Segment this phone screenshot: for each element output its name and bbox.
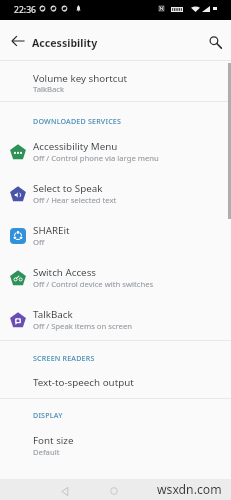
staticText: Text-to-speech output	[33, 376, 134, 389]
staticText: Volume key shortcut	[33, 72, 128, 85]
staticText: Switch Access	[33, 266, 97, 279]
button[interactable]: SHAREit	[0, 217, 231, 259]
button[interactable]: Font size	[0, 427, 231, 471]
staticText: SHAREit	[33, 224, 70, 237]
button[interactable]: Select to Speak	[0, 175, 231, 217]
button[interactable]: TalkBack	[0, 301, 231, 343]
staticText: Off / Control device with switches	[33, 279, 154, 289]
staticText: Default	[33, 447, 60, 457]
button[interactable]: Volume key shortcut	[0, 61, 231, 105]
staticText: SCREEN READERS	[33, 353, 95, 363]
button[interactable]: Accessibility Menu	[0, 133, 231, 175]
staticText: Accessibility Menu	[33, 140, 118, 153]
button[interactable]: Back	[3, 26, 33, 56]
staticText: wsxdn.com	[157, 481, 222, 498]
staticText: DOWNLOADED SERVICES	[33, 116, 122, 126]
staticText: Off / Speak items on screen	[33, 321, 133, 331]
button[interactable]: Text-to-speech output	[0, 370, 231, 399]
staticText: TalkBack	[33, 84, 65, 94]
staticText: TalkBack	[33, 308, 73, 321]
staticText: Select to Speak	[33, 182, 103, 195]
staticText: 22:36	[14, 4, 36, 16]
staticText: Off / Control phone via large menu	[33, 153, 159, 163]
staticText: Off	[33, 237, 45, 247]
staticText: Font size	[33, 434, 74, 447]
button[interactable]: Back	[55, 481, 75, 500]
staticText: DISPLAY	[33, 410, 63, 420]
button[interactable]: Recent apps	[156, 480, 176, 500]
button[interactable]: Search	[200, 26, 228, 54]
button[interactable]: Switch Access	[0, 259, 231, 301]
staticText: Accessibility	[32, 36, 98, 50]
button[interactable]: Home	[104, 481, 124, 500]
staticText: Off / Hear selected text	[33, 195, 117, 205]
